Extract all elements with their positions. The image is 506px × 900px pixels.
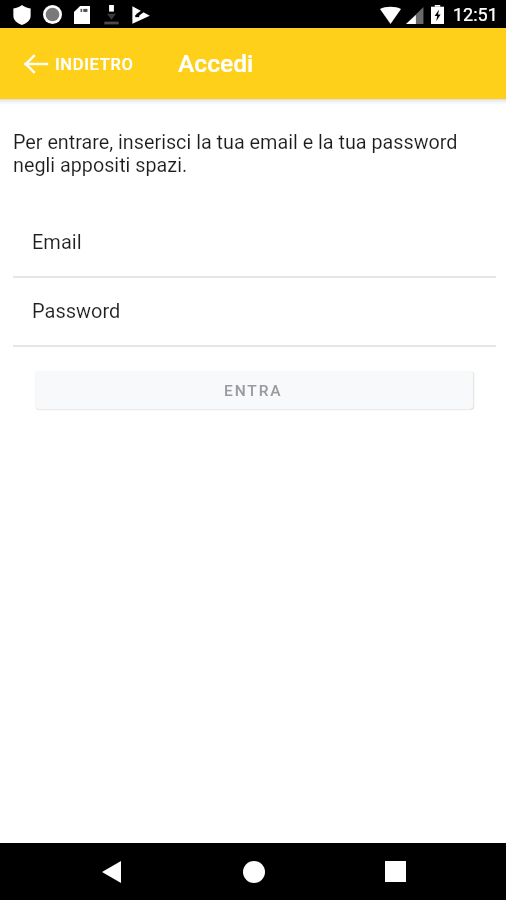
button[interactable]: Back <box>83 845 140 898</box>
button[interactable]: INDIETRO <box>25 54 134 74</box>
staticText: 12:51 <box>453 4 498 25</box>
button[interactable]: Email <box>0 191 506 260</box>
staticText: ENTRA <box>224 382 283 400</box>
button[interactable]: Recent apps <box>367 845 424 898</box>
staticText: Accedi <box>178 49 254 78</box>
staticText: INDIETRO <box>55 55 134 74</box>
staticText: Password <box>32 299 121 322</box>
button[interactable]: Password <box>0 260 506 329</box>
button[interactable]: Home <box>225 845 282 898</box>
button[interactable]: ENTRA <box>36 371 473 409</box>
staticText: Per entrare, inserisci la tua email e la… <box>13 131 458 177</box>
staticText: Email <box>32 230 82 253</box>
